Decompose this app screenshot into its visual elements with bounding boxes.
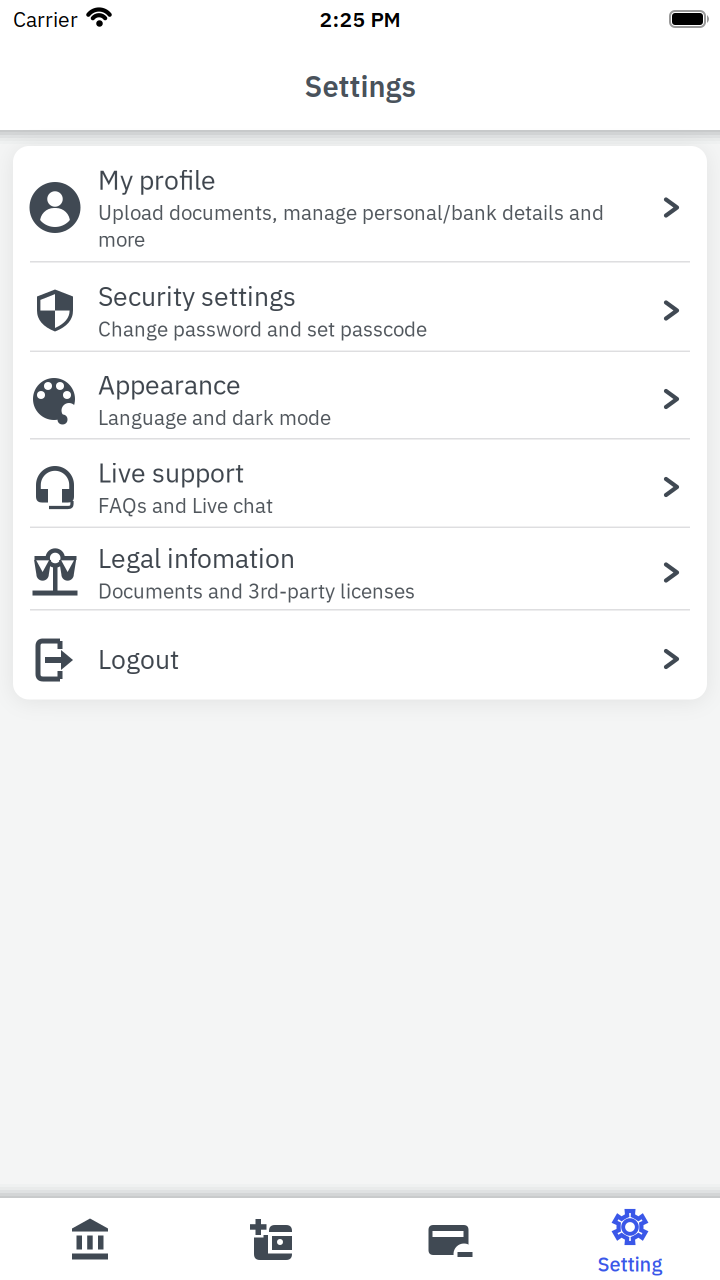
button[interactable]: Top up: [180, 1208, 360, 1270]
staticText: Documents and 3rd-party licenses: [98, 577, 415, 604]
button[interactable]: Accounts: [0, 1208, 180, 1270]
staticText: Appearance: [98, 367, 241, 402]
staticText: Security settings: [98, 279, 296, 313]
button[interactable]: Live support: [13, 439, 707, 526]
staticText: Carrier: [13, 5, 78, 33]
staticText: Setting: [597, 1251, 662, 1277]
staticText: My profile: [98, 163, 216, 197]
button[interactable]: Logout: [13, 610, 707, 699]
button[interactable]: Setting: [540, 1203, 720, 1275]
staticText: Live support: [98, 455, 244, 490]
staticText: 2:25 PM: [319, 5, 400, 33]
button[interactable]: Legal infomation: [13, 528, 707, 609]
staticText: FAQs and Live chat: [98, 492, 273, 519]
staticText: Settings: [304, 67, 415, 105]
staticText: Legal infomation: [98, 541, 295, 575]
staticText: Logout: [98, 642, 179, 676]
button[interactable]: My profile: [13, 146, 707, 261]
button[interactable]: Security settings: [13, 262, 707, 350]
button[interactable]: Cards: [360, 1208, 540, 1270]
staticText: Upload documents, manage personal/bank d…: [98, 199, 604, 252]
staticText: Change password and set passcode: [98, 315, 427, 342]
button[interactable]: Appearance: [13, 352, 707, 438]
staticText: Language and dark mode: [98, 404, 331, 431]
